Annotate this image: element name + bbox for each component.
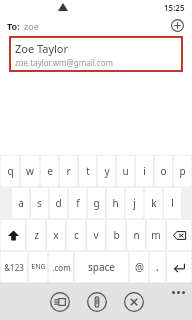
button[interactable]: r xyxy=(60,156,77,186)
staticText: .com xyxy=(52,262,71,273)
button[interactable]: i xyxy=(136,156,153,186)
staticText: @ xyxy=(135,260,144,274)
button[interactable]: o xyxy=(155,156,172,186)
button[interactable]: v xyxy=(87,220,105,250)
staticText: v xyxy=(93,228,99,242)
staticText: j xyxy=(133,196,136,210)
button[interactable]: d xyxy=(50,188,67,218)
button[interactable]: Close xyxy=(120,288,148,316)
staticText: f xyxy=(76,196,80,210)
staticText: c xyxy=(74,228,79,242)
staticText: m xyxy=(151,228,161,242)
button[interactable]: t xyxy=(79,156,96,186)
button[interactable]: m xyxy=(147,220,165,250)
staticText: l xyxy=(171,196,174,210)
button[interactable]: Shift xyxy=(1,220,25,250)
button[interactable]: Zoe Taylor xyxy=(9,36,183,72)
staticText: s xyxy=(37,196,42,210)
staticText: q xyxy=(7,164,14,178)
staticText: To: xyxy=(7,20,20,32)
button[interactable]: q xyxy=(1,156,19,186)
button[interactable]: s xyxy=(31,188,48,218)
button[interactable]: More options xyxy=(172,291,185,294)
staticText: y xyxy=(104,164,110,178)
button[interactable]: n xyxy=(127,220,145,250)
button[interactable]: l xyxy=(164,188,181,218)
button[interactable]: j xyxy=(126,188,143,218)
staticText: ENG xyxy=(31,262,46,272)
button[interactable]: p xyxy=(174,156,191,186)
button[interactable]: . xyxy=(150,252,165,282)
staticText: p xyxy=(179,164,186,178)
staticText: g xyxy=(93,196,100,210)
button[interactable]: f xyxy=(69,188,86,218)
staticText: a xyxy=(18,196,24,210)
staticText: zoe.taylor.wm@gmail.com xyxy=(15,57,114,68)
button[interactable]: ENG xyxy=(29,252,47,282)
staticText: Zoe Taylor xyxy=(15,41,69,56)
button[interactable]: Backspace xyxy=(167,220,191,250)
staticText: r xyxy=(66,164,71,178)
staticText: u xyxy=(122,164,129,178)
staticText: k xyxy=(151,196,157,210)
button[interactable]: h xyxy=(107,188,124,218)
staticText: z xyxy=(34,228,39,242)
button[interactable]: space xyxy=(75,252,128,282)
button[interactable]: y xyxy=(98,156,115,186)
button[interactable]: c xyxy=(67,220,85,250)
button[interactable]: .com xyxy=(49,252,73,282)
staticText: d xyxy=(55,196,62,210)
button[interactable]: &123 xyxy=(1,252,27,282)
staticText: n xyxy=(133,228,140,242)
button[interactable]: g xyxy=(88,188,105,218)
staticText: w xyxy=(26,164,34,178)
staticText: h xyxy=(112,196,119,210)
button[interactable]: Attach xyxy=(83,288,111,316)
staticText: e xyxy=(47,164,53,178)
button[interactable]: b xyxy=(107,220,125,250)
button[interactable]: Send xyxy=(46,288,74,316)
button[interactable]: k xyxy=(145,188,162,218)
staticText: t xyxy=(86,164,90,178)
button[interactable]: Add recipient xyxy=(167,15,188,36)
button[interactable]: w xyxy=(21,156,39,186)
button[interactable]: e xyxy=(41,156,58,186)
staticText: &123 xyxy=(4,262,24,273)
button[interactable]: x xyxy=(47,220,65,250)
staticText: space xyxy=(88,260,115,274)
staticText: b xyxy=(113,228,120,242)
button[interactable]: @ xyxy=(130,252,148,282)
button[interactable]: z xyxy=(27,220,45,250)
staticText: i xyxy=(143,164,146,178)
staticText: . xyxy=(156,260,159,274)
staticText: x xyxy=(53,228,59,242)
staticText: 15:25 xyxy=(164,2,185,13)
staticText: zoe xyxy=(24,20,39,32)
button[interactable]: a xyxy=(12,188,29,218)
button[interactable]: u xyxy=(117,156,134,186)
staticText: o xyxy=(160,164,167,178)
button[interactable]: Enter xyxy=(167,252,191,282)
